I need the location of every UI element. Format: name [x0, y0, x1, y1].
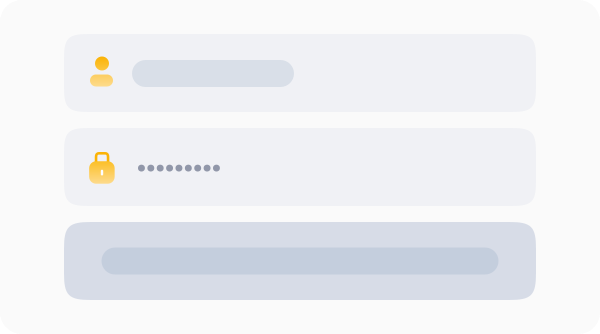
button[interactable]: Password	[64, 128, 536, 206]
button[interactable]: Sign in	[64, 222, 536, 300]
button[interactable]: Username	[64, 34, 536, 112]
